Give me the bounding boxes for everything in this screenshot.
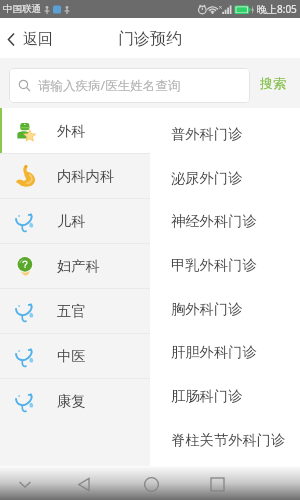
staticText: 五官 [57,302,86,320]
staticText: 儿科 [57,212,86,230]
button[interactable]: 泌尿外门诊 [150,156,300,200]
button[interactable]: Back [50,466,118,500]
staticText: 神经外科门诊 [171,212,257,230]
staticText: 肛肠科门诊 [171,387,243,405]
staticText: 泌尿外门诊 [171,169,243,187]
staticText: 普外科门诊 [171,125,243,143]
staticText: 门诊预约 [118,29,182,49]
staticText: 请输入疾病/医生姓名查询 [38,77,181,94]
button[interactable]: 普外科门诊 [150,112,300,156]
staticText: 胸外科门诊 [171,300,243,318]
staticText: 外科 [57,122,86,140]
button[interactable]: 中医 [0,333,150,378]
button[interactable]: 胸外科门诊 [150,287,300,331]
button[interactable]: 请输入疾病/医生姓名查询 [9,68,250,103]
button[interactable]: 外科 [0,108,150,153]
staticText: 中医 [57,347,86,365]
button[interactable]: 搜索 [250,58,300,108]
staticText: 返回 [23,30,53,49]
staticText: 妇产科 [57,257,100,275]
staticText: 康复 [57,392,86,410]
button[interactable]: Home [118,466,184,500]
staticText: 晚上8:05 [257,2,297,16]
staticText: 中国联通 [3,3,41,15]
button[interactable]: 内科内科 [0,153,150,198]
staticText: 搜索 [260,75,286,91]
button[interactable]: 康复 [0,378,150,423]
button[interactable]: 神经外科门诊 [150,199,300,243]
staticText: 脊柱关节外科门诊 [171,431,286,449]
button[interactable]: Hide keyboard [0,466,50,500]
button[interactable]: 肛肠科门诊 [150,374,300,418]
staticText: 内科内科 [57,167,115,185]
button[interactable]: 脊柱关节外科门诊 [150,418,300,462]
button[interactable]: 儿科 [0,198,150,243]
staticText: 肝胆外科门诊 [171,343,257,361]
button[interactable]: 妇产科 [0,243,150,288]
button[interactable]: 甲乳外科门诊 [150,243,300,287]
button[interactable]: Recent apps [184,466,250,500]
button[interactable]: 肝胆外科门诊 [150,330,300,374]
staticText: 甲乳外科门诊 [171,256,257,274]
button[interactable]: 五官 [0,288,150,333]
button[interactable]: 返回 [0,18,63,58]
